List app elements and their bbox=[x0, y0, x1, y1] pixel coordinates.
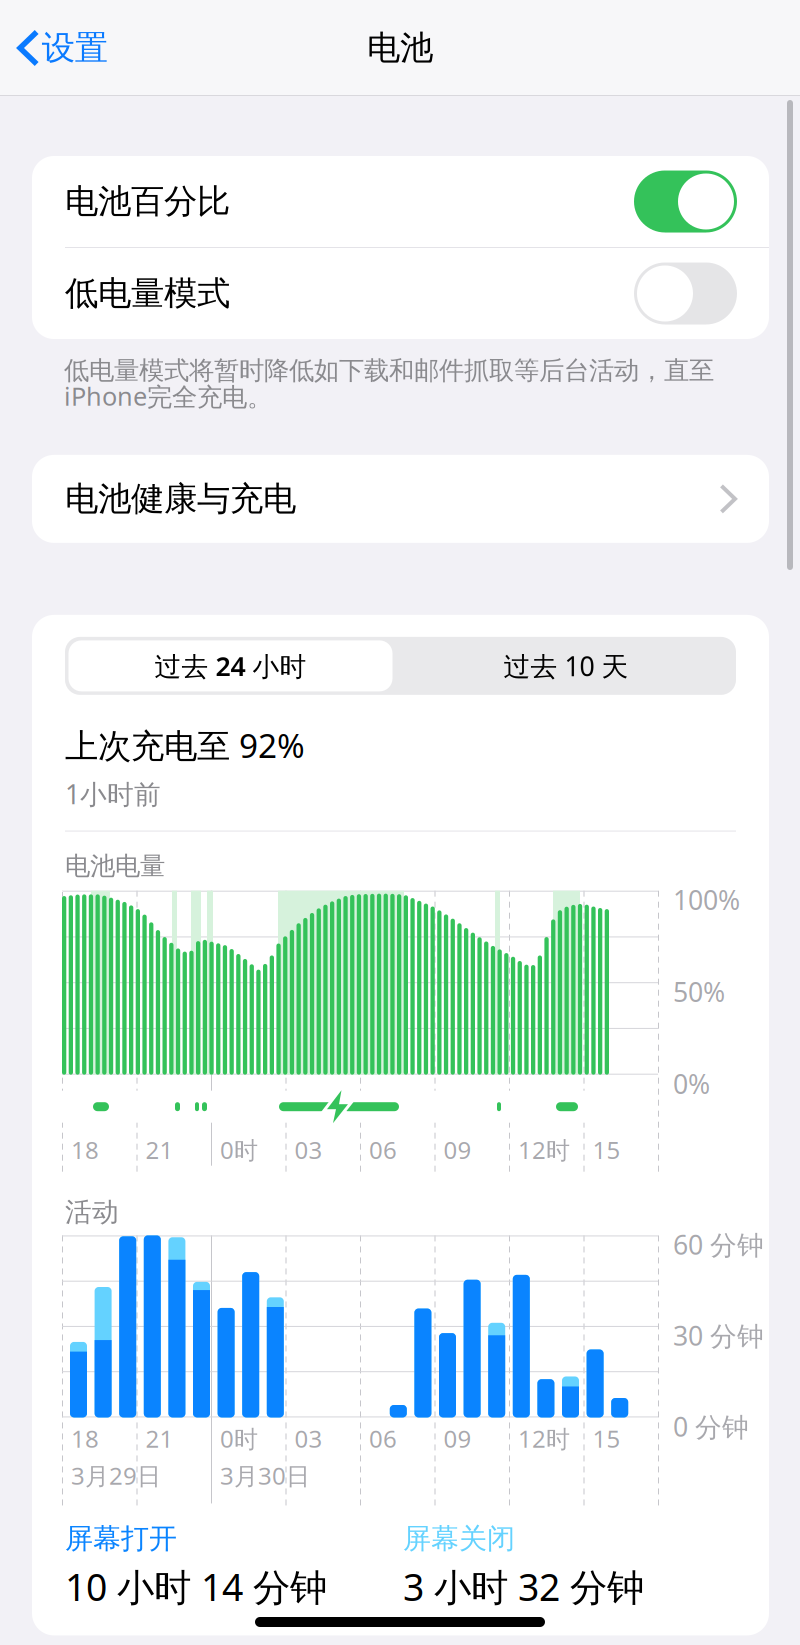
staticText: 3 小时 32 分钟 bbox=[403, 1562, 644, 1611]
staticText: 低电量模式将暂时降低如下载和邮件抓取等后台活动，直至 bbox=[64, 355, 714, 386]
staticText: 09 bbox=[443, 1134, 471, 1166]
staticText: 06 bbox=[369, 1422, 397, 1454]
staticText: 屏幕关闭 bbox=[403, 1521, 515, 1556]
staticText: 06 bbox=[369, 1134, 397, 1166]
staticText: 21 bbox=[145, 1134, 173, 1166]
staticText: 过去 10 天 bbox=[503, 648, 628, 684]
button[interactable]: 过去 10 天 bbox=[396, 637, 736, 695]
staticText: 18 bbox=[71, 1134, 99, 1166]
button[interactable]: 电池百分比 bbox=[32, 156, 769, 247]
staticText: 50% bbox=[673, 974, 725, 1009]
button[interactable]: 低电量模式 bbox=[32, 248, 769, 339]
staticText: 3月29日 bbox=[71, 1459, 161, 1491]
staticText: 15 bbox=[592, 1422, 620, 1454]
staticText: 过去 24 小时 bbox=[154, 648, 306, 684]
button[interactable]: On bbox=[634, 170, 737, 232]
staticText: 0 分钟 bbox=[673, 1409, 749, 1444]
staticText: 0时 bbox=[220, 1134, 258, 1166]
staticText: 设置 bbox=[42, 27, 108, 68]
staticText: 03 bbox=[294, 1422, 322, 1454]
staticText: 0% bbox=[673, 1066, 710, 1101]
staticText: 上次充电至 92% bbox=[65, 723, 305, 767]
staticText: 15 bbox=[592, 1134, 620, 1166]
staticText: 18 bbox=[71, 1422, 99, 1454]
staticText: 100% bbox=[673, 882, 740, 917]
button[interactable]: 电池健康与充电 bbox=[32, 455, 769, 543]
staticText: 21 bbox=[145, 1422, 173, 1454]
staticText: 1小时前 bbox=[65, 776, 161, 812]
staticText: 30 分钟 bbox=[673, 1318, 764, 1353]
staticText: 低电量模式 bbox=[65, 273, 230, 314]
staticText: 03 bbox=[294, 1134, 322, 1166]
button[interactable]: Off bbox=[634, 262, 737, 324]
staticText: iPhone完全充电。 bbox=[64, 379, 272, 413]
staticText: 电池百分比 bbox=[65, 181, 230, 222]
staticText: 电池 bbox=[367, 27, 433, 68]
button[interactable]: 过去 24 小时 bbox=[65, 637, 396, 695]
staticText: 10 小时 14 分钟 bbox=[65, 1562, 327, 1611]
staticText: 12时 bbox=[518, 1422, 570, 1454]
staticText: 3月30日 bbox=[220, 1459, 310, 1491]
staticText: 60 分钟 bbox=[673, 1227, 764, 1262]
staticText: 12时 bbox=[518, 1134, 570, 1166]
staticText: 活动 bbox=[65, 1196, 119, 1228]
staticText: 09 bbox=[443, 1422, 471, 1454]
staticText: 屏幕打开 bbox=[65, 1521, 177, 1556]
button[interactable]: 设置 bbox=[0, 0, 122, 96]
staticText: 0时 bbox=[220, 1422, 258, 1454]
staticText: 电池健康与充电 bbox=[65, 478, 296, 519]
staticText: 电池电量 bbox=[65, 851, 165, 882]
